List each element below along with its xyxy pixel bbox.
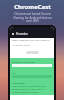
button[interactable] — [26, 51, 39, 54]
staticText: Receiver connection — [12, 60, 35, 63]
staticText: Select a device to cast your screen to — [12, 39, 50, 42]
staticText: Presenter — [16, 32, 28, 36]
staticText: ChromeCast — [14, 3, 51, 11]
staticText: Instructions — [12, 81, 26, 84]
staticText: Open the url in a browser on the receivi… — [12, 85, 46, 94]
staticText: Chromecast based Screen Sharing for Andr… — [13, 12, 52, 23]
staticText: Url — [12, 71, 16, 74]
staticText: No devices found — [12, 44, 30, 47]
